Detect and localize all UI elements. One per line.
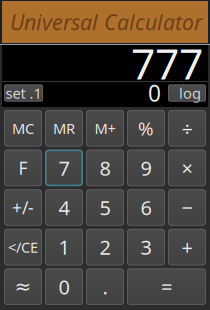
staticText: MC	[12, 119, 34, 138]
button[interactable]: 5	[86, 189, 124, 226]
staticText: 0	[148, 78, 161, 108]
button[interactable]: −	[168, 189, 206, 226]
button[interactable]: 4	[45, 189, 83, 226]
staticText: %	[138, 116, 154, 141]
staticText: MR	[53, 119, 75, 138]
staticText: </CE	[8, 237, 38, 257]
staticText: ÷	[181, 115, 192, 142]
staticText: 0	[58, 273, 69, 300]
button[interactable]: 2	[86, 229, 124, 265]
staticText: +/-	[12, 196, 34, 219]
button[interactable]: MC	[4, 110, 42, 147]
staticText: 5	[99, 194, 110, 221]
button[interactable]: 8	[86, 150, 124, 186]
button[interactable]: 6	[127, 189, 165, 226]
button[interactable]: set .1	[4, 84, 43, 101]
button[interactable]: ×	[168, 150, 206, 186]
button[interactable]: .	[86, 268, 124, 305]
staticText: 1	[58, 234, 69, 260]
staticText: .	[102, 273, 107, 300]
button[interactable]: F	[4, 150, 42, 186]
staticText: 7	[58, 155, 69, 181]
staticText: M+	[94, 119, 115, 138]
staticText: 2	[99, 234, 110, 260]
button[interactable]: 3	[127, 229, 165, 265]
button[interactable]: 9	[127, 150, 165, 186]
button[interactable]: 0	[45, 268, 83, 305]
staticText: 9	[140, 155, 151, 181]
button[interactable]: ÷	[168, 110, 206, 147]
staticText: F	[18, 156, 27, 179]
staticText: Universal Calculator	[10, 8, 202, 36]
staticText: =	[161, 273, 172, 300]
button[interactable]: M+	[86, 110, 124, 147]
staticText: −	[181, 194, 192, 221]
button[interactable]: log	[168, 84, 206, 101]
staticText: +	[181, 234, 192, 260]
button[interactable]: MR	[45, 110, 83, 147]
staticText: 3	[140, 234, 151, 260]
staticText: ×	[181, 155, 192, 181]
staticText: set .1	[5, 83, 41, 103]
button[interactable]: ≈	[4, 268, 42, 305]
staticText: 777	[131, 35, 203, 91]
button[interactable]: %	[127, 110, 165, 147]
button[interactable]: 1	[45, 229, 83, 265]
staticText: ≈	[14, 275, 31, 298]
button[interactable]: =	[127, 268, 206, 305]
button[interactable]: </CE	[4, 229, 42, 265]
staticText: log	[179, 83, 201, 103]
button[interactable]: +	[168, 229, 206, 265]
staticText: 4	[58, 194, 69, 221]
staticText: 6	[140, 194, 151, 221]
button[interactable]: 7	[45, 150, 83, 186]
button[interactable]: +/-	[4, 189, 42, 226]
staticText: 8	[99, 155, 110, 181]
